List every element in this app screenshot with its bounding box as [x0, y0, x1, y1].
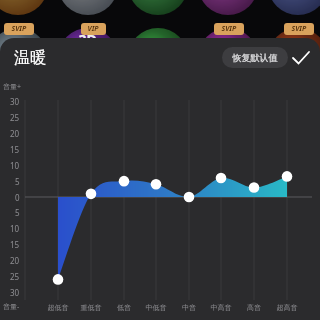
button[interactable] — [0, 0, 320, 320]
button[interactable]: 确定 — [290, 47, 312, 69]
button[interactable] — [222, 47, 288, 68]
